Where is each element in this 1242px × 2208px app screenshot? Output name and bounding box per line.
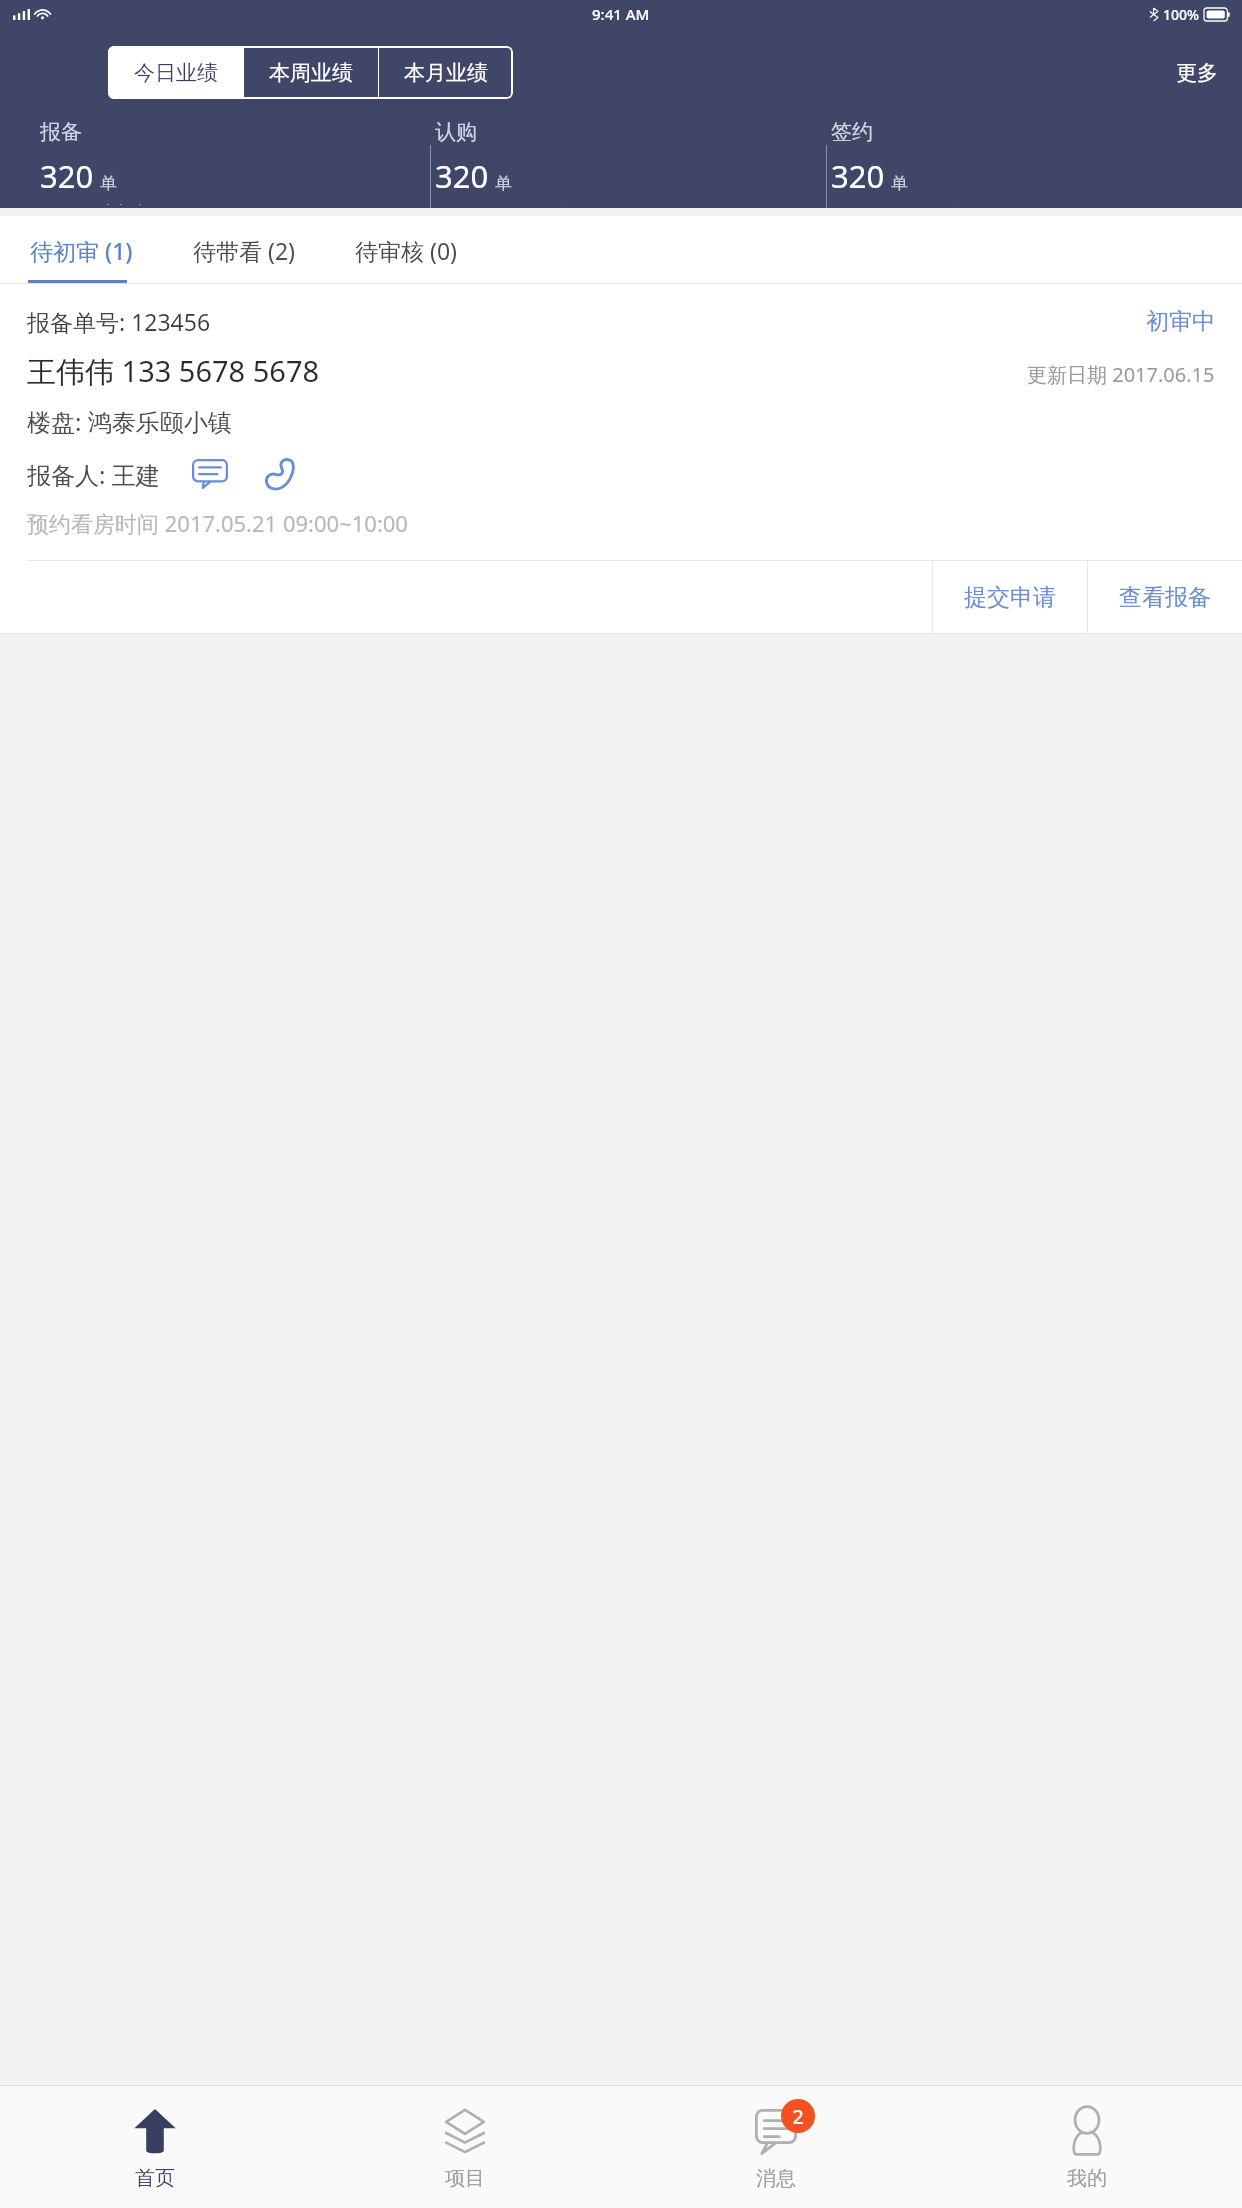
button[interactable]: 我的 [931, 2086, 1242, 2208]
button[interactable]: 更多 [1170, 52, 1224, 94]
button[interactable]: 查看报备 [1088, 561, 1242, 633]
staticText: 待带看 (2) [193, 235, 295, 266]
button[interactable]: 待初审 (1) [0, 216, 163, 284]
button[interactable]: 本周业绩 [244, 46, 378, 99]
staticText: 320 [831, 155, 885, 197]
staticText: 楼盘: 鸿泰乐颐小镇 [27, 405, 232, 438]
button[interactable]: 2 [620, 2086, 931, 2208]
button[interactable]: 拨打电话 [258, 454, 302, 494]
button[interactable]: 首页 [0, 2086, 310, 2208]
staticText: 查看报备 [1119, 583, 1211, 612]
staticText: 待审核 (0) [355, 235, 457, 266]
staticText: 更新日期 2017.06.15 [1027, 361, 1215, 388]
button[interactable]: 待审核 (0) [325, 216, 487, 284]
staticText: 项目 [445, 2166, 485, 2191]
staticText: 我的 [1067, 2166, 1107, 2191]
staticText: 消息 [756, 2166, 796, 2191]
staticText: 单 [495, 173, 512, 194]
staticText: 报备 [40, 119, 82, 145]
staticText: 9:41 AM [592, 4, 650, 24]
staticText: 初审中 [1146, 307, 1215, 336]
staticText: 100% [1163, 5, 1199, 24]
staticText: 报备单号: 123456 [27, 306, 211, 337]
button[interactable]: 待带看 (2) [163, 216, 325, 284]
staticText: 今日业绩 [134, 60, 218, 86]
staticText: 提交申请 [964, 583, 1056, 612]
staticText: 更多 [1176, 60, 1218, 86]
staticText: 王伟伟 133 5678 5678 [27, 351, 320, 391]
staticText: 首页 [135, 2166, 175, 2191]
staticText: 待初审 (1) [30, 235, 133, 266]
button[interactable]: 发送消息 [188, 455, 232, 493]
staticText: 预约看房时间 2017.05.21 09:00~10:00 [27, 508, 408, 538]
staticText: 320 [435, 155, 489, 197]
staticText: 单 [891, 173, 908, 194]
staticText: 本周业绩 [269, 60, 353, 86]
button[interactable]: 项目 [310, 2086, 620, 2208]
staticText: 单 [100, 173, 117, 194]
button[interactable]: 报备单号: 123456 [0, 284, 1242, 634]
button[interactable]: 本月业绩 [379, 46, 513, 99]
staticText: 2 [792, 2103, 804, 2130]
staticText: 认购 [435, 119, 477, 145]
staticText: 报备人: 王建 [27, 458, 160, 491]
staticText: 320 [40, 155, 94, 197]
button[interactable]: 今日业绩 [108, 46, 243, 99]
button[interactable]: 提交申请 [933, 561, 1087, 633]
staticText: 本月业绩 [404, 60, 488, 86]
staticText: 人报备 [100, 202, 151, 205]
staticText: 签约 [831, 119, 873, 145]
